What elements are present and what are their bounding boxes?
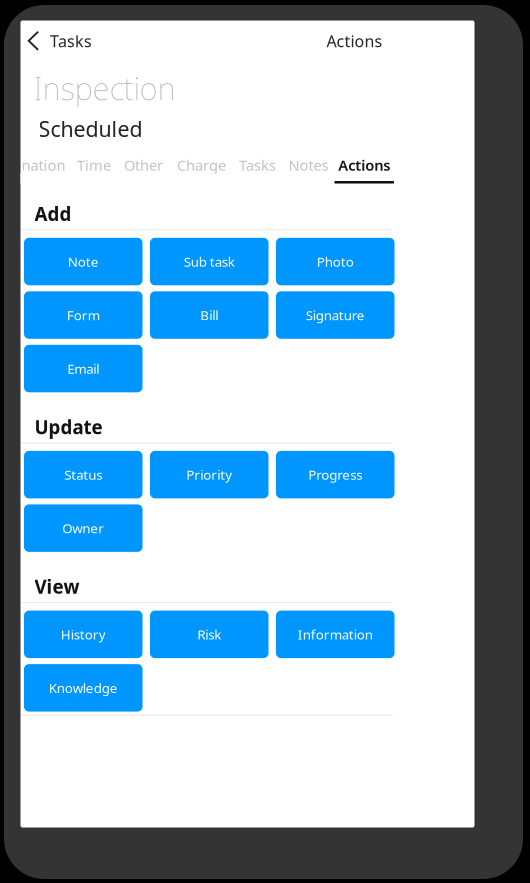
button[interactable]: Time bbox=[71, 156, 116, 183]
staticText: Tasks bbox=[50, 30, 92, 52]
button[interactable]: Signature bbox=[276, 291, 394, 339]
staticText: Progress bbox=[308, 466, 362, 483]
button[interactable]: Actions bbox=[334, 156, 394, 183]
staticText: Scheduled bbox=[38, 114, 142, 143]
staticText: Signature bbox=[306, 306, 365, 324]
button[interactable]: nation bbox=[15, 156, 71, 183]
staticText: Notes bbox=[288, 155, 328, 175]
button[interactable]: Information bbox=[276, 611, 394, 658]
button[interactable]: Tasks bbox=[20, 24, 99, 58]
button[interactable]: Actions bbox=[316, 24, 392, 58]
staticText: Photo bbox=[317, 253, 354, 270]
staticText: Tasks bbox=[239, 155, 276, 175]
staticText: nation bbox=[21, 155, 65, 175]
staticText: History bbox=[61, 625, 106, 643]
staticText: Update bbox=[34, 414, 102, 439]
button[interactable]: Bill bbox=[150, 291, 268, 339]
staticText: Charge bbox=[177, 155, 226, 175]
button[interactable]: Email bbox=[24, 345, 142, 392]
button[interactable]: Notes bbox=[282, 156, 334, 183]
staticText: Actions bbox=[326, 30, 382, 52]
staticText: Status bbox=[64, 466, 102, 483]
button[interactable]: Tasks bbox=[232, 156, 282, 183]
staticText: Knowledge bbox=[49, 679, 118, 697]
button[interactable]: Priority bbox=[150, 451, 268, 498]
staticText: Priority bbox=[186, 466, 232, 483]
staticText: View bbox=[34, 574, 79, 599]
staticText: Email bbox=[67, 360, 99, 377]
staticText: Sub task bbox=[184, 253, 235, 270]
staticText: Risk bbox=[197, 625, 221, 643]
button[interactable]: History bbox=[24, 611, 142, 658]
button[interactable]: Other bbox=[116, 156, 170, 183]
staticText: Note bbox=[68, 253, 99, 270]
staticText: Actions bbox=[338, 155, 390, 175]
staticText: Add bbox=[34, 201, 71, 226]
button[interactable]: Photo bbox=[276, 238, 394, 285]
button[interactable]: Note bbox=[24, 238, 142, 285]
button[interactable]: Knowledge bbox=[24, 664, 142, 712]
button[interactable]: Status bbox=[24, 451, 142, 498]
staticText: Form bbox=[67, 306, 100, 324]
staticText: Bill bbox=[200, 306, 218, 324]
staticText: Owner bbox=[62, 519, 104, 537]
button[interactable]: Risk bbox=[150, 611, 268, 658]
staticText: Inspection bbox=[34, 68, 176, 109]
staticText: Information bbox=[298, 625, 373, 643]
staticText: Time bbox=[77, 155, 111, 175]
button[interactable]: Owner bbox=[24, 504, 142, 552]
button[interactable]: Charge bbox=[170, 156, 232, 183]
button[interactable]: Progress bbox=[276, 451, 394, 498]
staticText: Other bbox=[124, 155, 163, 175]
button[interactable]: Form bbox=[24, 291, 142, 339]
button[interactable]: Sub task bbox=[150, 238, 268, 285]
